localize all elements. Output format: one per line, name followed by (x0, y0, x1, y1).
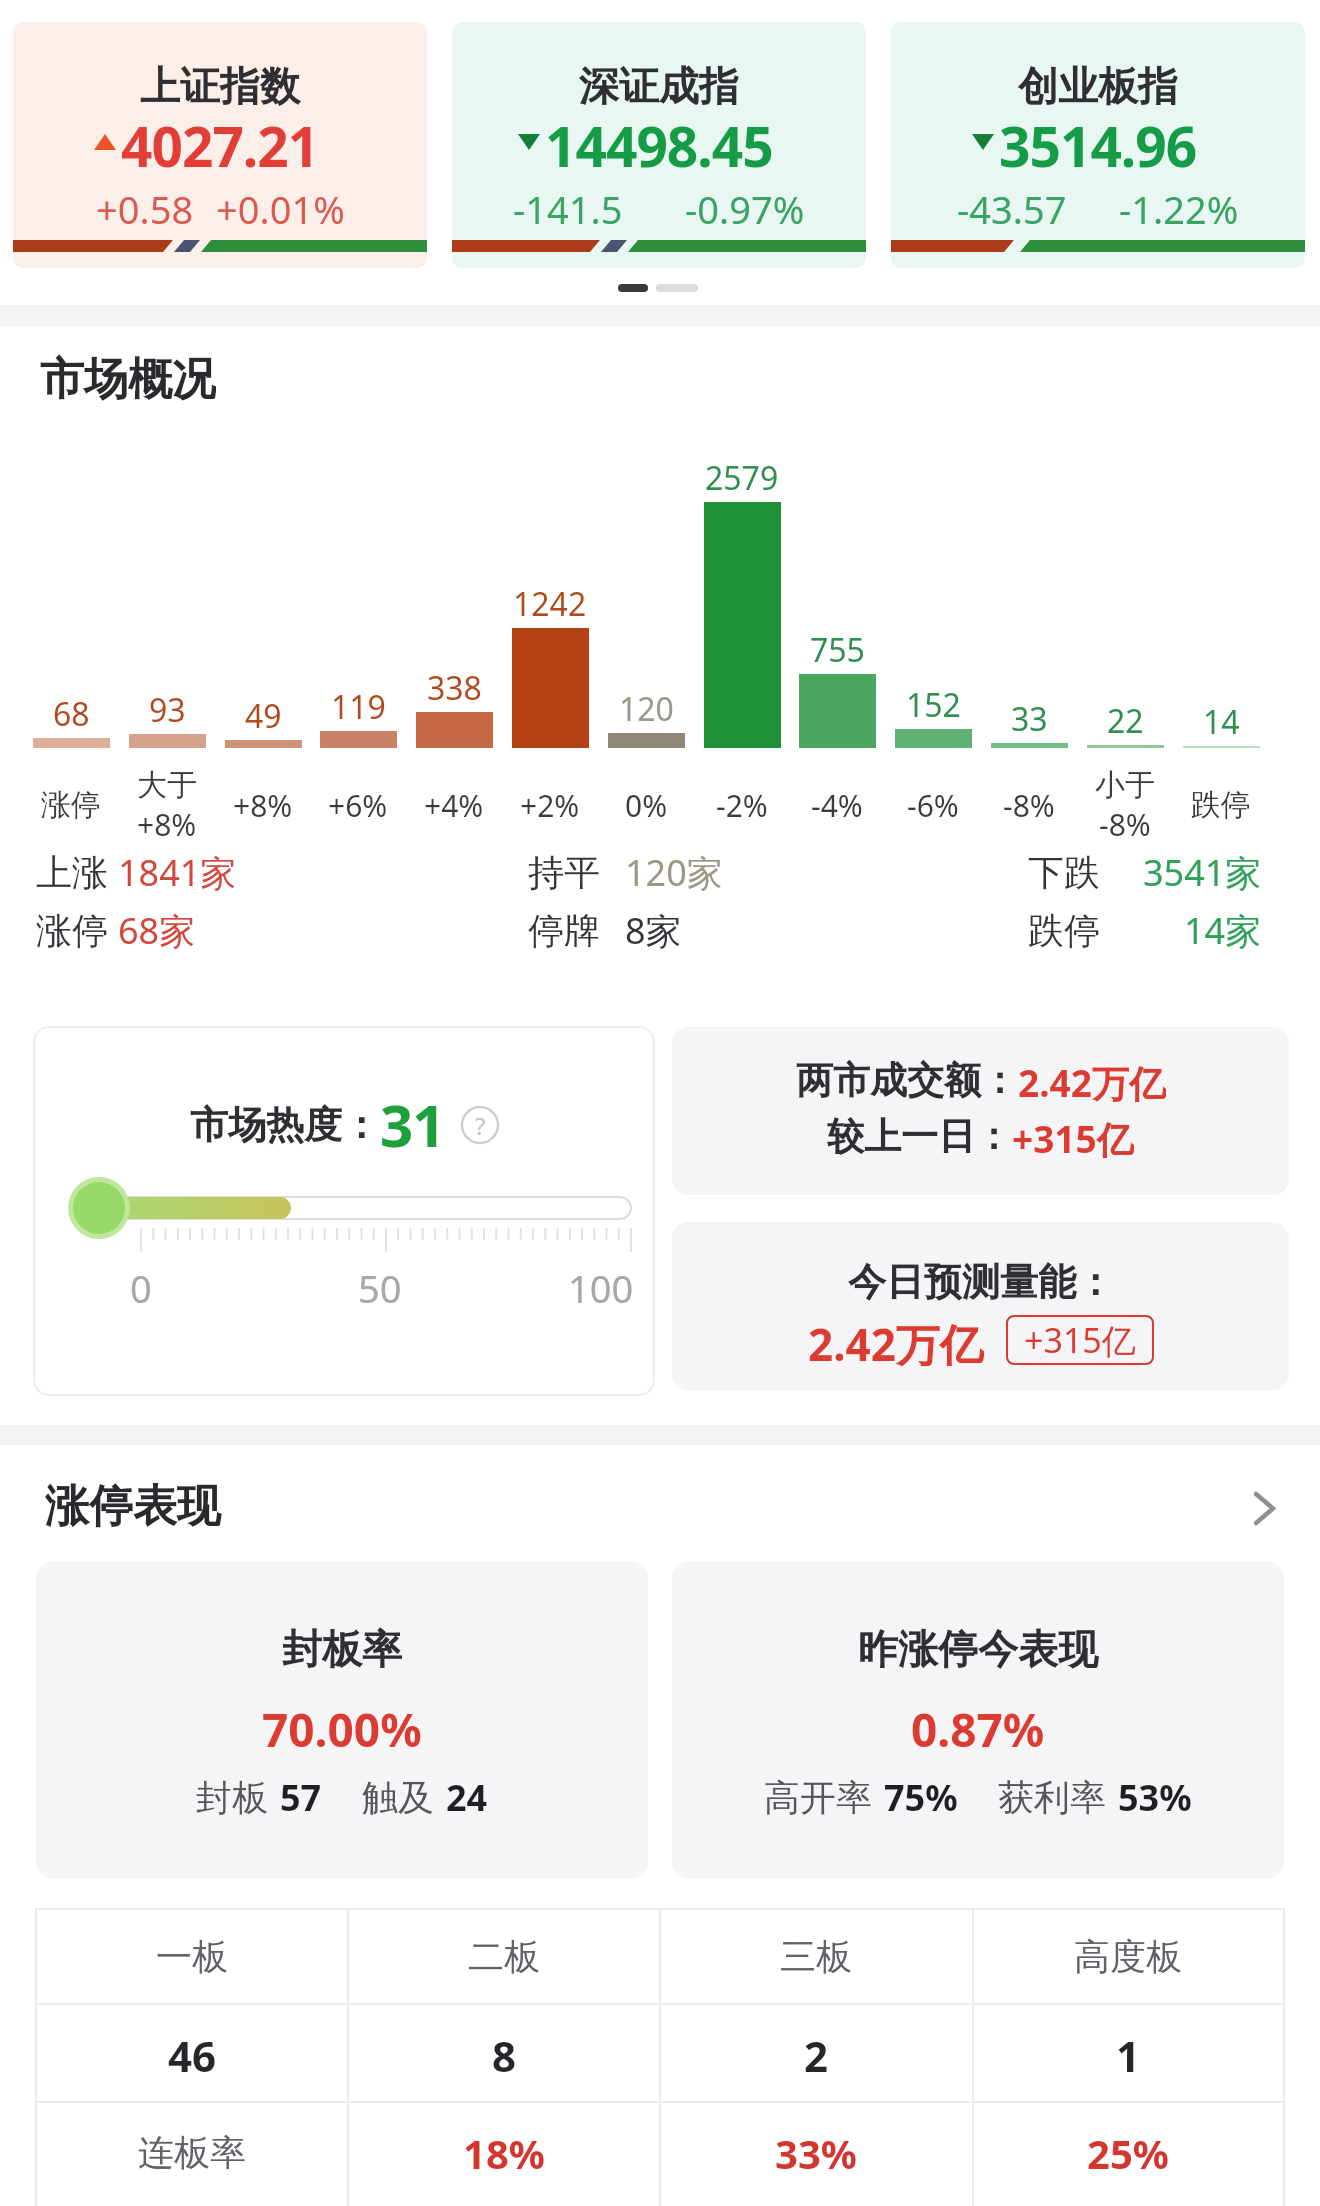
staticText: 涨停 (41, 786, 101, 824)
staticText: 3514.96 (999, 108, 1197, 176)
staticText: 2.42万亿 (808, 1314, 984, 1366)
staticText: 封板 (196, 1775, 268, 1820)
staticText: +8% (233, 785, 293, 826)
staticText: 14 (1203, 700, 1240, 740)
staticText: 1242 (513, 582, 587, 622)
staticText: 100 (568, 1262, 634, 1314)
staticText: 1841家 (118, 848, 237, 897)
staticText: +4% (424, 785, 484, 826)
staticText: -4% (811, 785, 863, 826)
staticText: 49 (245, 694, 282, 734)
staticText: -1.22% (1119, 183, 1239, 229)
staticText: 2.42万亿 (1018, 1057, 1166, 1103)
staticText: 68 (53, 692, 90, 732)
staticText: 市场热度： (190, 1101, 380, 1149)
staticText: 触及 (362, 1775, 434, 1820)
staticText: -2% (716, 785, 768, 826)
staticText: 25% (1087, 2126, 1169, 2178)
staticText: +315亿 (1024, 1317, 1136, 1363)
staticText: 14498.45 (545, 108, 773, 176)
staticText: -141.5 (513, 183, 623, 229)
staticText: 152 (906, 683, 961, 723)
staticText: 2 (804, 2027, 829, 2079)
staticText: -6% (907, 785, 959, 826)
staticText: 今日预测量能： (848, 1258, 1114, 1304)
staticText: 涨停表现 (45, 1479, 221, 1534)
staticText: 高开率 (764, 1775, 872, 1820)
staticText: 0.87% (911, 1698, 1045, 1754)
staticText: 跌停 (1028, 908, 1100, 953)
button[interactable]: 昨涨停今表现 (672, 1562, 1284, 1878)
button[interactable]: 封板率 (36, 1562, 648, 1878)
staticText: 75% (884, 1773, 958, 1822)
staticText: 三板 (780, 1934, 852, 1979)
staticText: 338 (427, 666, 482, 706)
staticText: 22 (1107, 699, 1144, 739)
staticText: 31 (380, 1085, 445, 1164)
staticText: 连板率 (138, 2130, 246, 2175)
staticText: 120家 (625, 848, 723, 897)
staticText: 两市成交额： (796, 1057, 1018, 1103)
staticText: 持平 (528, 850, 600, 895)
staticText: 下跌 (1028, 850, 1100, 895)
staticText: 70.00% (262, 1698, 422, 1754)
staticText: -8% (1003, 785, 1055, 826)
staticText: 0 (130, 1262, 152, 1314)
staticText: 14家 (1184, 906, 1262, 955)
staticText: 3541家 (1143, 848, 1262, 897)
staticText: 深证成指 (579, 61, 739, 111)
staticText: -43.57 (957, 183, 1067, 229)
staticText: 2579 (705, 456, 779, 496)
staticText: 53% (1118, 1773, 1192, 1822)
staticText: 创业板指 (1018, 61, 1178, 111)
staticText: 4027.21 (121, 108, 319, 176)
button[interactable]: 今日预测量能： (672, 1222, 1289, 1390)
staticText: 119 (331, 685, 386, 725)
staticText: -0.97% (685, 183, 805, 229)
staticText: 50 (358, 1262, 402, 1314)
staticText: +315亿 (1012, 1113, 1134, 1159)
staticText: 93 (149, 688, 186, 728)
button[interactable]: 市场热度： (33, 1026, 655, 1396)
staticText: +2% (520, 785, 580, 826)
staticText: 市场概况 (40, 352, 216, 406)
staticText: 0% (625, 785, 668, 826)
staticText: 33 (1011, 697, 1048, 737)
staticText: 高度板 (1074, 1934, 1182, 1979)
button[interactable] (1242, 1486, 1286, 1530)
button[interactable]: 两市成交额： (672, 1027, 1289, 1195)
staticText: 较上一日： (827, 1113, 1012, 1159)
staticText: +0.58 (96, 183, 194, 229)
staticText: 24 (446, 1773, 488, 1822)
staticText: 涨停 (36, 908, 108, 953)
staticText: 57 (280, 1773, 322, 1822)
staticText: 获利率 (998, 1775, 1106, 1820)
staticText: 120 (619, 687, 674, 727)
staticText: +0.01% (216, 183, 345, 229)
staticText: ? (475, 1109, 486, 1142)
staticText: 8家 (625, 906, 682, 955)
button[interactable]: 深证成指 (452, 22, 866, 268)
staticText: 上涨 (36, 850, 108, 895)
staticText: 33% (775, 2126, 857, 2178)
button[interactable]: 上证指数 (13, 22, 427, 268)
staticText: 一板 (156, 1934, 228, 1979)
staticText: 68家 (118, 906, 196, 955)
staticText: 上证指数 (140, 61, 300, 111)
staticText: 封板率 (282, 1624, 402, 1674)
staticText: +8% (137, 804, 197, 845)
staticText: 755 (810, 628, 865, 668)
staticText: 46 (168, 2027, 217, 2079)
staticText: 小于 (1095, 766, 1155, 804)
staticText: 停牌 (528, 908, 600, 953)
staticText: 8 (492, 2027, 517, 2079)
staticText: 18% (463, 2126, 545, 2178)
staticText: +6% (328, 785, 388, 826)
staticText: -8% (1099, 804, 1151, 845)
staticText: 二板 (468, 1934, 540, 1979)
staticText: 大于 (137, 766, 197, 804)
staticText: 昨涨停今表现 (858, 1624, 1098, 1674)
staticText: 1 (1116, 2027, 1141, 2079)
button[interactable]: 创业板指 (891, 22, 1305, 268)
staticText: 跌停 (1191, 786, 1251, 824)
